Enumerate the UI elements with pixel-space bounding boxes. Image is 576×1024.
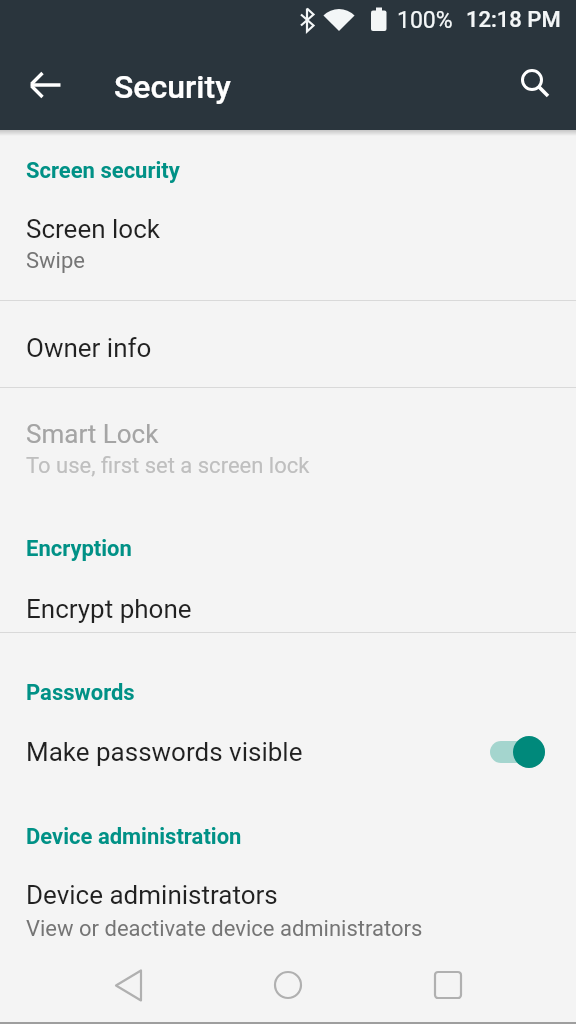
staticText: Device administrators [26,880,278,910]
staticText: View or deactivate device administrators [26,916,423,942]
button[interactable]: Owner info [0,301,576,387]
button[interactable]: Make passwords visible [0,712,576,794]
button[interactable] [12,53,78,119]
staticText: 12:18 PM [466,7,561,33]
staticText: Device administration [26,824,242,850]
staticText: Owner info [26,333,152,363]
staticText: Security [114,68,231,106]
button[interactable] [260,957,316,1013]
button[interactable]: Smart Lock [0,388,576,505]
button[interactable]: Encrypt phone [0,570,576,632]
staticText: Encrypt phone [26,594,192,624]
staticText: Swipe [26,248,85,274]
staticText: To use, first set a screen lock [26,453,310,479]
staticText: Screen lock [26,214,160,244]
staticText: Make passwords visible [26,737,303,767]
button[interactable] [102,957,158,1013]
staticText: Encryption [26,536,132,562]
staticText: 100% [397,7,453,34]
button[interactable]: Device administrators [0,856,576,960]
button[interactable] [420,957,476,1013]
staticText: Passwords [26,680,135,706]
button[interactable]: Screen lock [0,192,576,300]
button[interactable] [503,53,565,115]
staticText: Smart Lock [26,419,159,449]
staticText: Screen security [26,158,180,184]
